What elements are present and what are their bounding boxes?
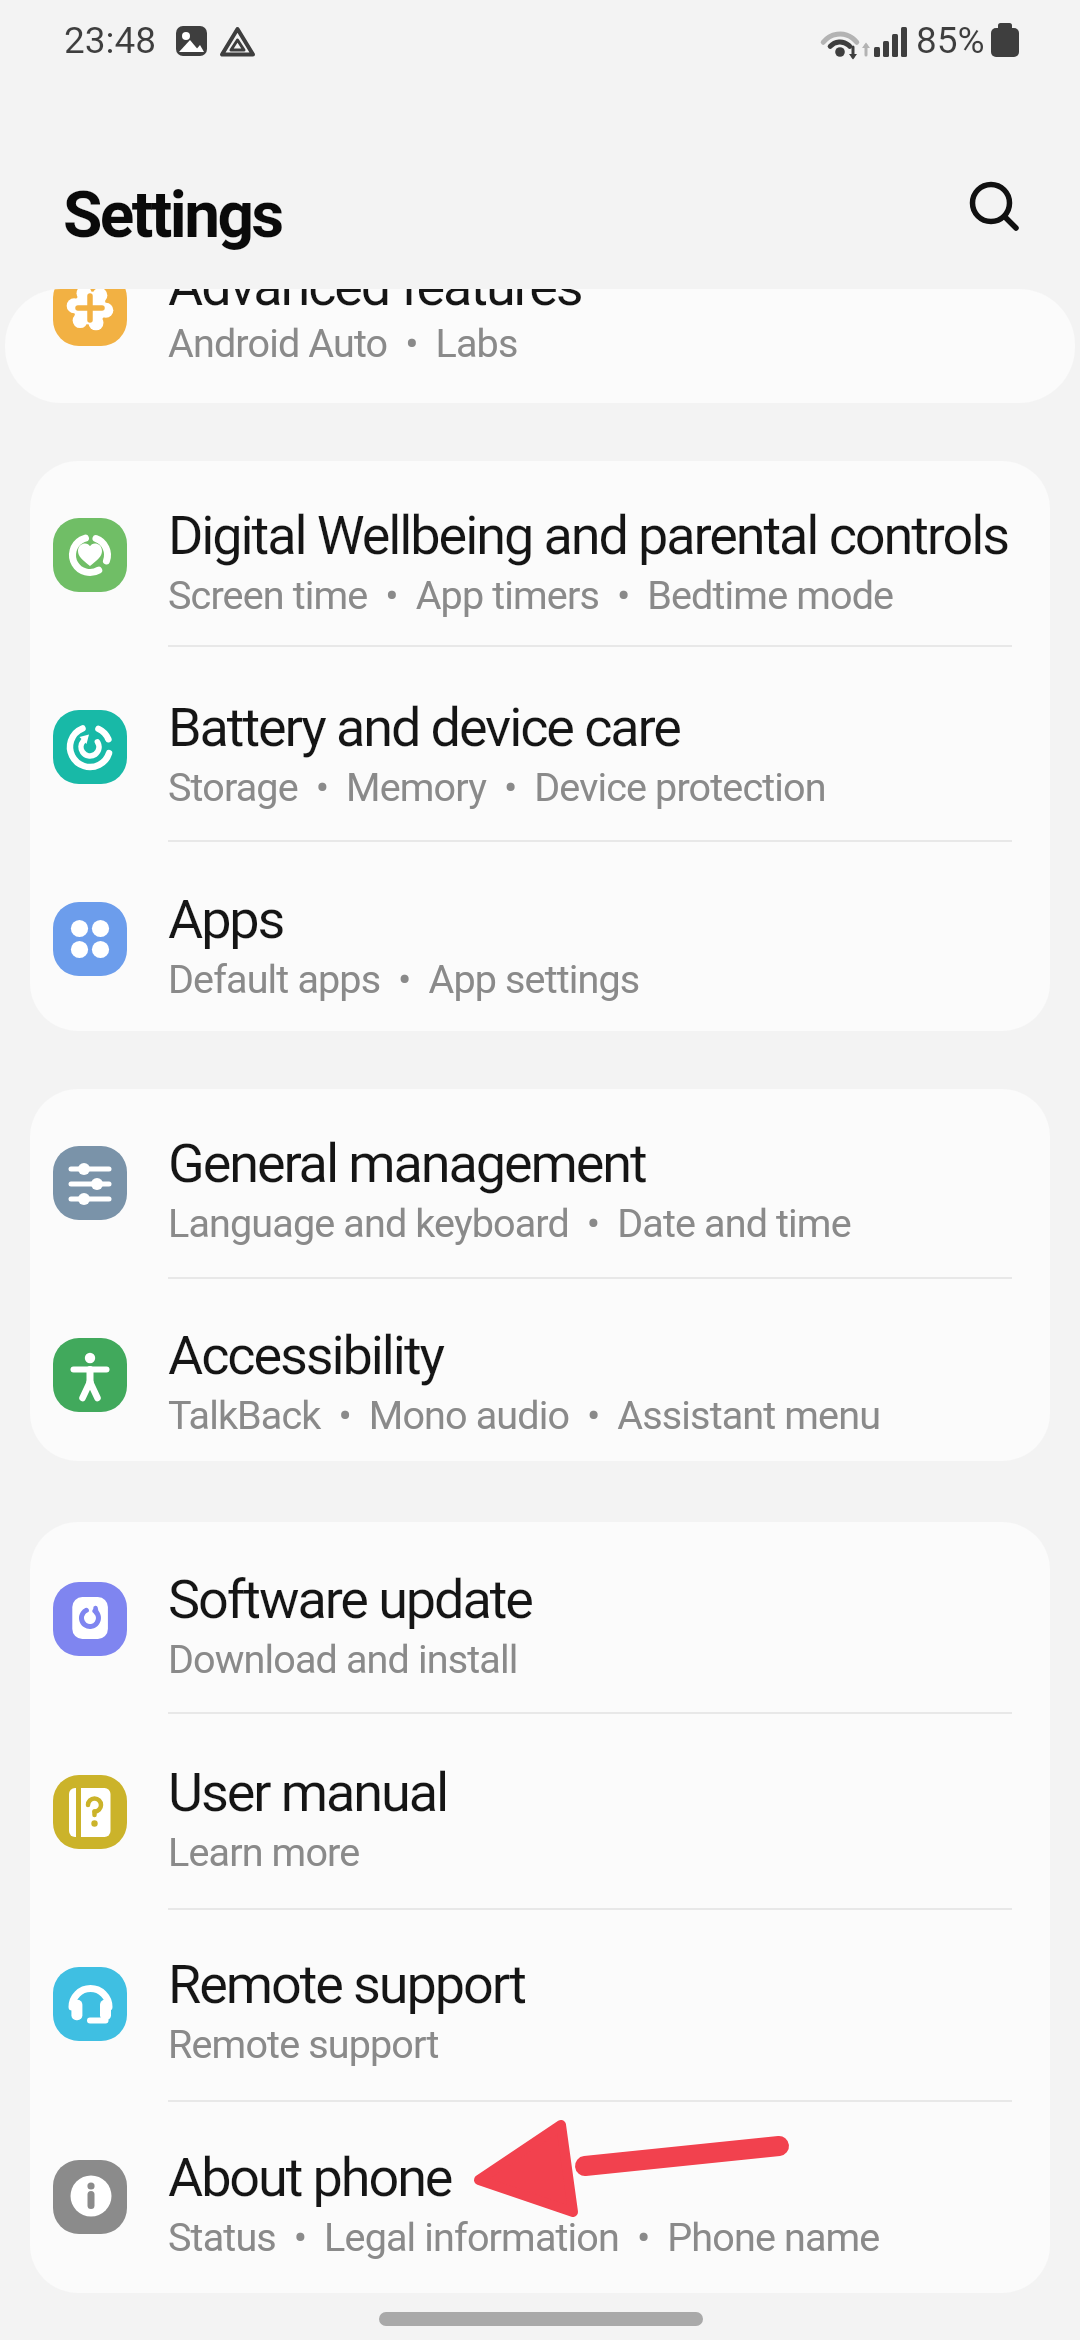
- staticText: 85%: [916, 19, 985, 62]
- staticText: Apps: [168, 888, 284, 951]
- button[interactable]: Advanced features: [5, 289, 1075, 403]
- staticText: TalkBack • Mono audio • Assistant menu: [168, 1392, 881, 1438]
- staticText: User manual: [168, 1761, 447, 1824]
- staticText: Status • Legal information • Phone name: [168, 2214, 880, 2260]
- staticText: Language and keyboard • Date and time: [168, 1200, 851, 1246]
- staticText: Software update: [168, 1568, 532, 1631]
- staticText: Battery and device care: [168, 696, 680, 759]
- staticText: About phone: [168, 2146, 452, 2209]
- staticText: Remote support: [168, 1953, 525, 2016]
- button[interactable]: User manual: [30, 1716, 1050, 1908]
- staticText: Remote support: [168, 2021, 439, 2067]
- staticText: Advanced features: [168, 289, 582, 318]
- staticText: Download and install: [168, 1636, 518, 1682]
- staticText: Settings: [63, 178, 282, 253]
- staticText: Learn more: [168, 1829, 360, 1875]
- button[interactable]: About phone: [30, 2101, 1050, 2293]
- staticText: Default apps • App settings: [168, 956, 640, 1002]
- staticText: Android Auto • Labs: [168, 320, 518, 366]
- button[interactable]: Software update: [30, 1523, 1050, 1715]
- staticText: Digital Wellbeing and parental controls: [168, 504, 1008, 567]
- staticText: Storage • Memory • Device protection: [168, 764, 826, 810]
- button[interactable]: [379, 2312, 703, 2326]
- staticText: General management: [168, 1132, 646, 1195]
- staticText: Accessibility: [168, 1324, 443, 1387]
- button[interactable]: Accessibility: [30, 1279, 1050, 1471]
- staticText: 23:48: [64, 19, 157, 62]
- button[interactable]: Remote support: [30, 1908, 1050, 2100]
- button[interactable]: General management: [30, 1087, 1050, 1279]
- button[interactable]: Digital Wellbeing and parental controls: [30, 459, 1050, 651]
- button[interactable]: Apps: [30, 843, 1050, 1035]
- staticText: Screen time • App timers • Bedtime mode: [168, 572, 894, 618]
- button[interactable]: [961, 173, 1023, 235]
- button[interactable]: Battery and device care: [30, 651, 1050, 843]
